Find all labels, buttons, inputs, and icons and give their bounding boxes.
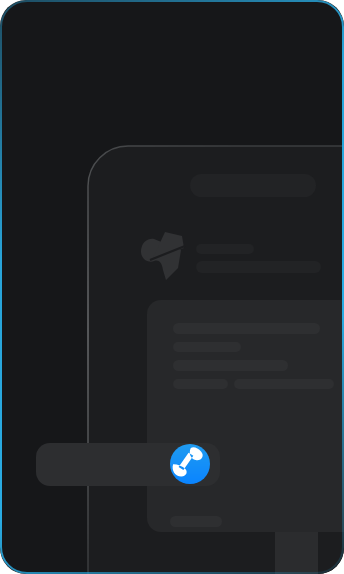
- button[interactable]: Contact card: [147, 300, 344, 532]
- button[interactable]: Call bar: [36, 443, 220, 486]
- button[interactable]: Call: [170, 444, 210, 484]
- button[interactable]: App logo: [140, 230, 190, 280]
